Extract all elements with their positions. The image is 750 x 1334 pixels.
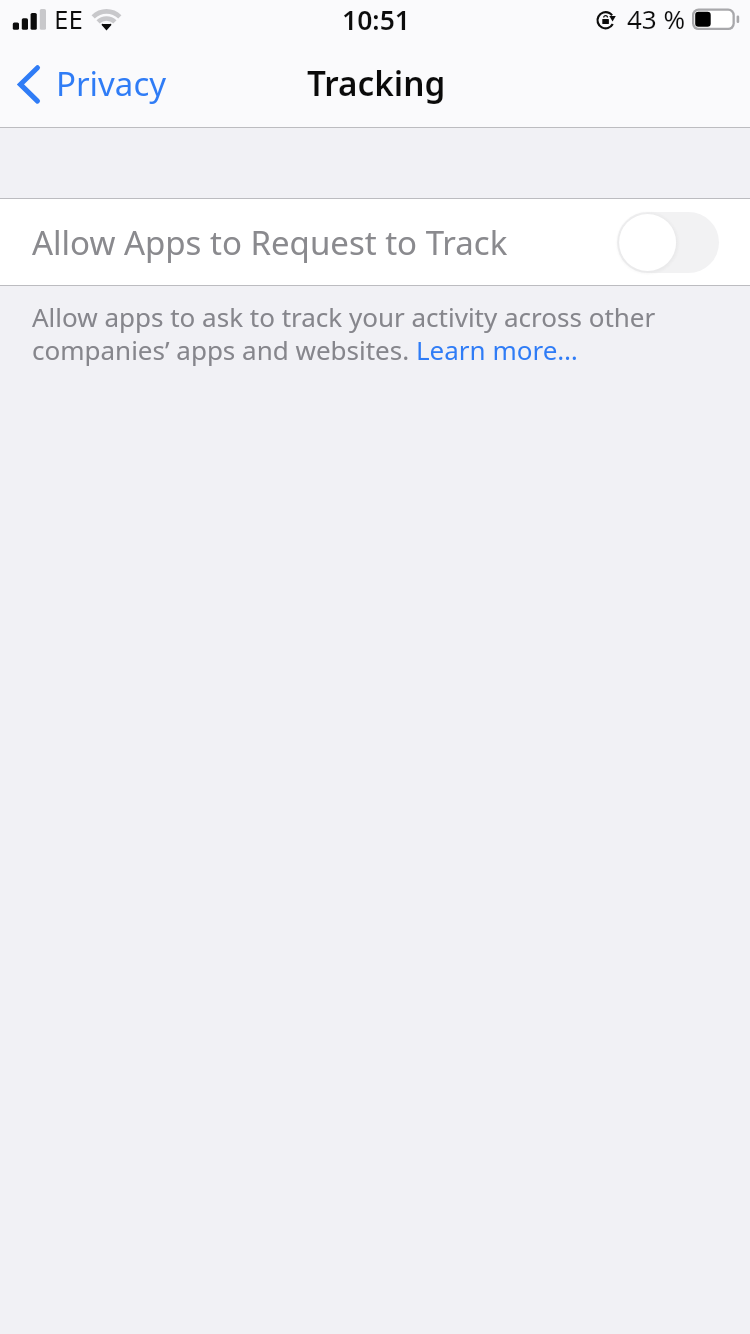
staticText: 10:51 (342, 2, 410, 38)
staticText: Allow Apps to Request to Track (32, 220, 508, 265)
staticText: 43 % (627, 1, 686, 36)
button[interactable]: Privacy (0, 48, 179, 122)
button[interactable]: Learn more (417, 337, 577, 367)
staticText: Privacy (56, 61, 167, 106)
button[interactable]: Allow Apps to Request to Track (0, 199, 750, 285)
staticText: EE (54, 1, 83, 36)
button[interactable]: Allow Apps to Request to Track toggle, o… (617, 212, 719, 273)
staticText: Tracking (307, 60, 446, 105)
staticText: Allow apps to ask to track your activity… (32, 299, 722, 367)
